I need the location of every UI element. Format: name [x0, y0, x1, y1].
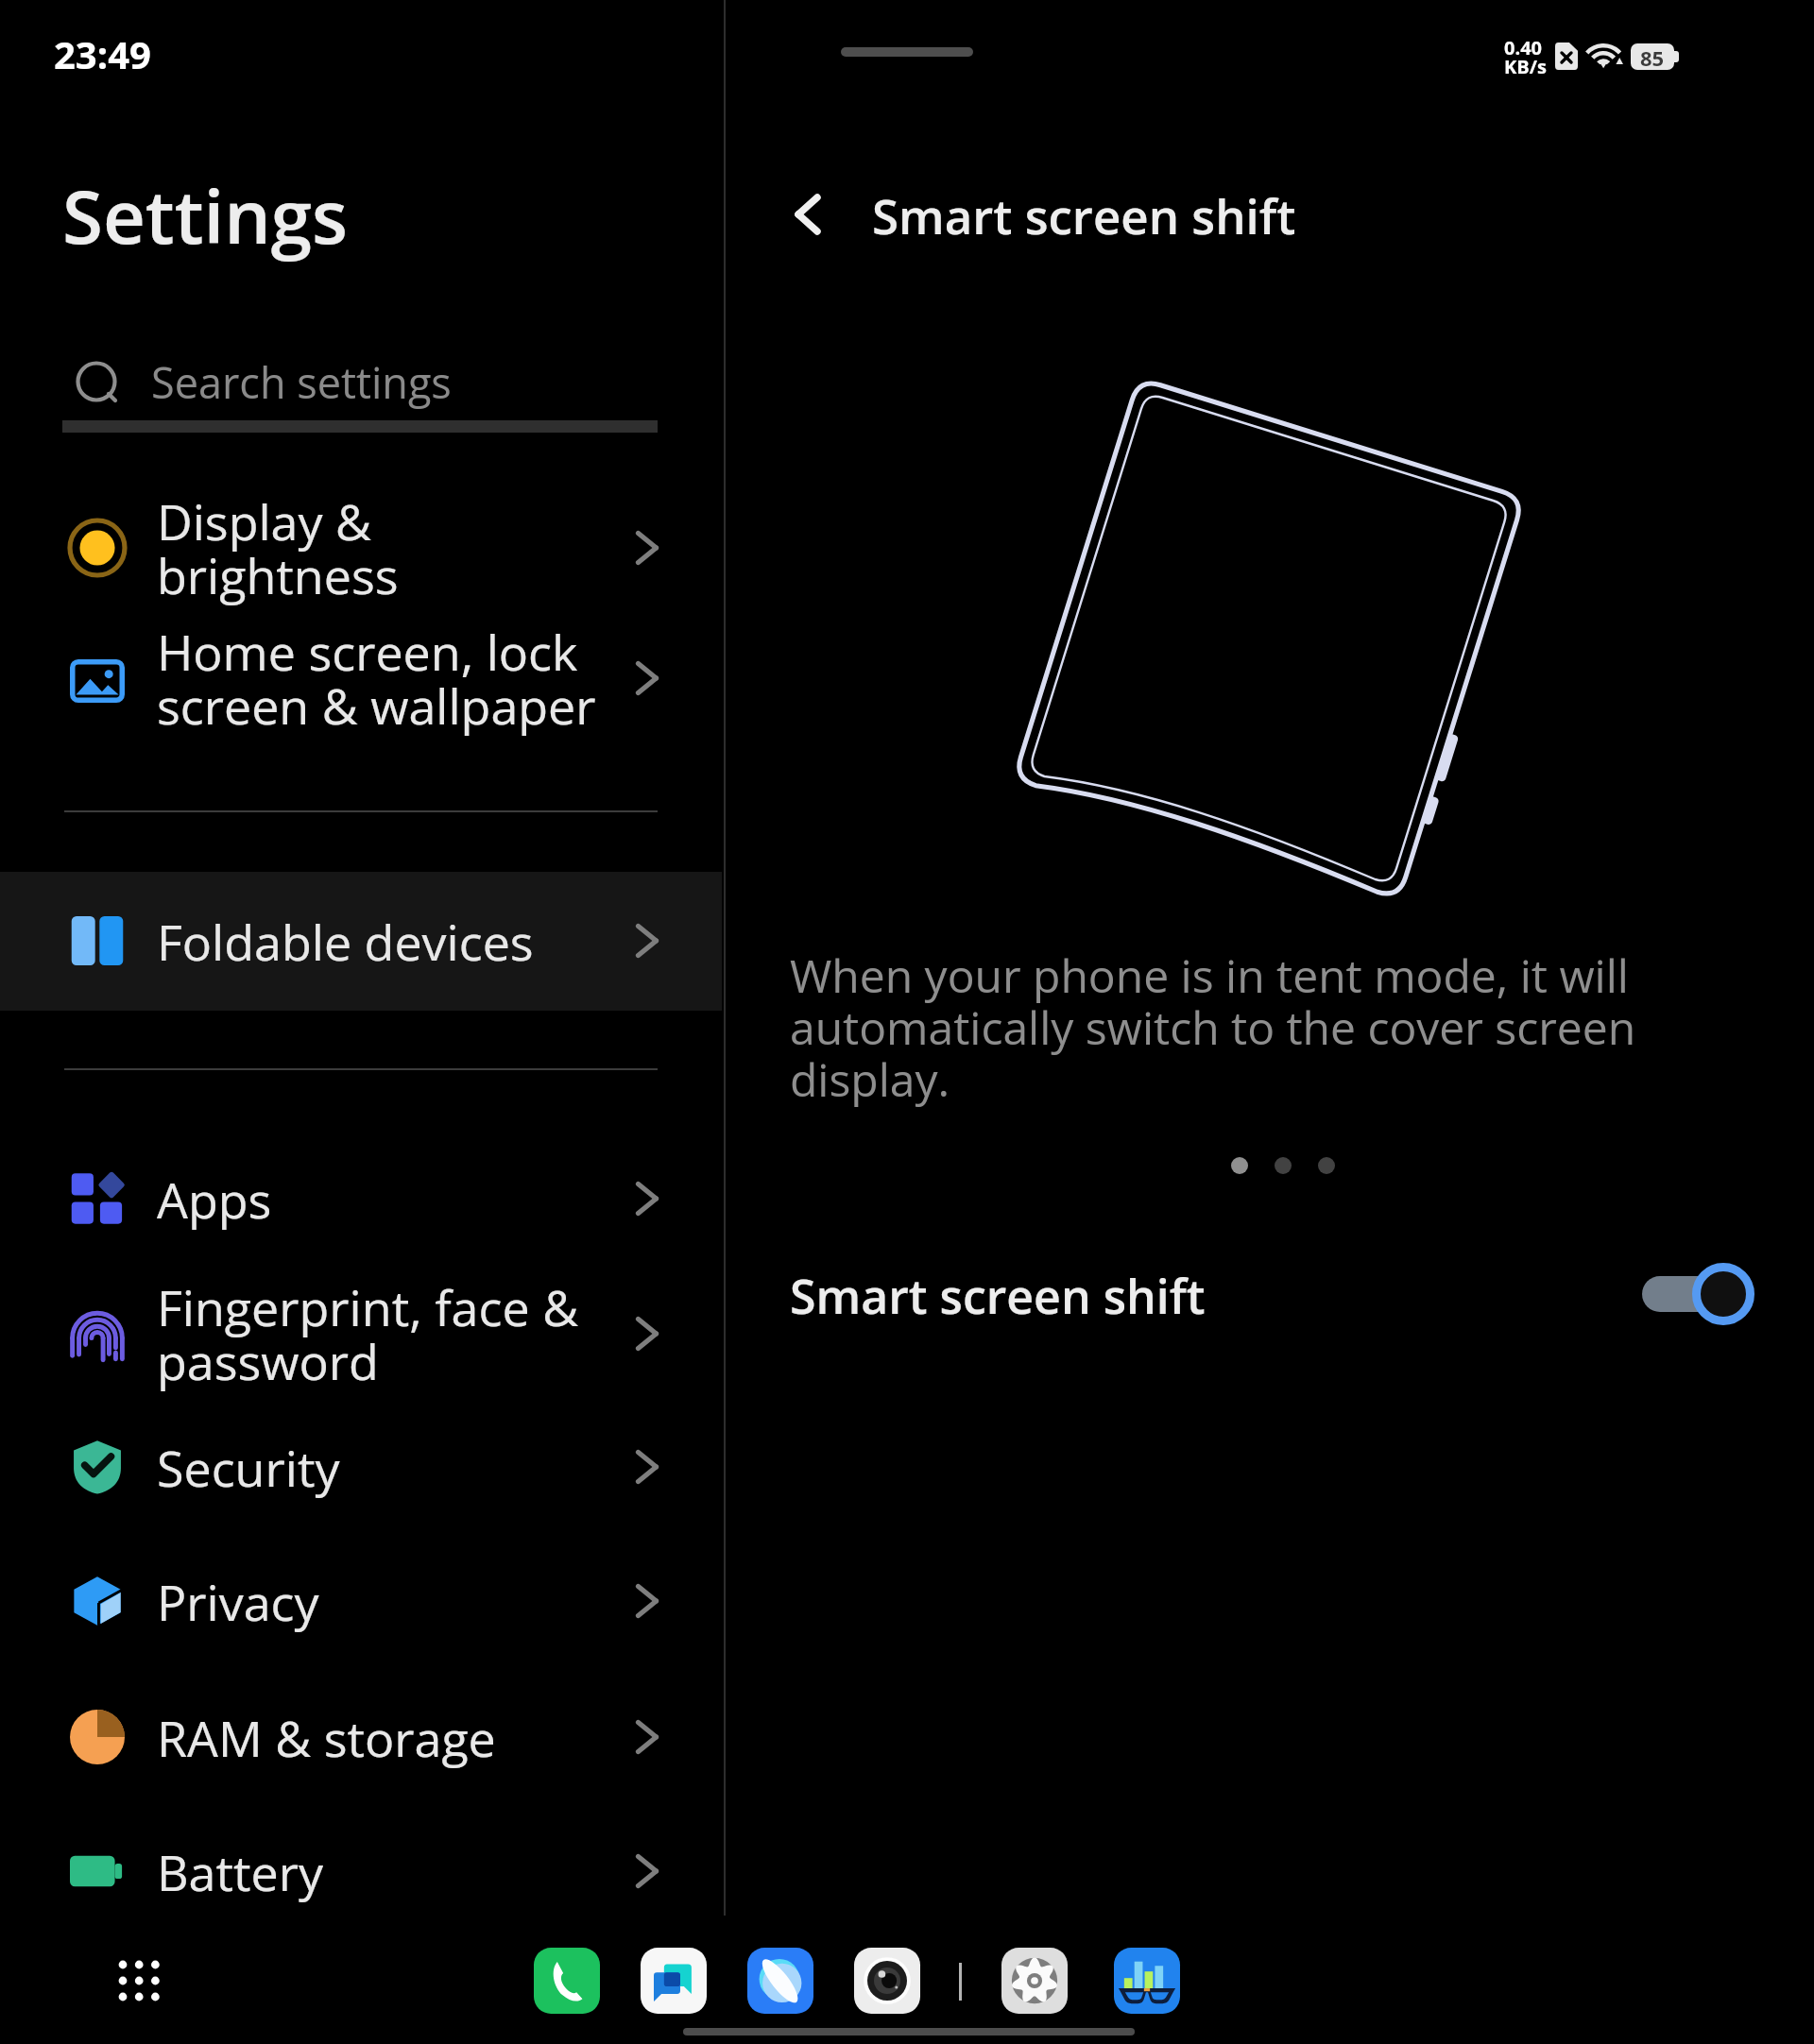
- staticText: Foldable devices: [157, 908, 622, 975]
- button[interactable]: App drawer: [106, 1944, 180, 2018]
- staticText: 0.40: [1504, 35, 1543, 60]
- staticText: Home screen, lock screen & wallpaper: [157, 618, 622, 739]
- button[interactable]: Battery: [0, 1804, 724, 1938]
- staticText: Settings: [62, 165, 349, 265]
- button[interactable]: Phone: [534, 1948, 600, 2014]
- staticText: Search settings: [151, 353, 452, 411]
- staticText: Battery: [157, 1838, 622, 1905]
- staticText: RAM & storage: [157, 1704, 622, 1771]
- button[interactable]: Smart screen shift: [746, 1228, 1776, 1360]
- button[interactable]: Camera: [854, 1948, 920, 2014]
- button[interactable]: Back: [761, 167, 855, 262]
- button[interactable]: Apps: [0, 1132, 724, 1266]
- staticText: Fingerprint, face & password: [157, 1273, 622, 1394]
- staticText: Apps: [157, 1166, 622, 1233]
- staticText: Display & brightness: [157, 487, 622, 608]
- button[interactable]: Display & brightness: [0, 481, 724, 615]
- staticText: KB/s: [1504, 54, 1547, 79]
- staticText: Security: [157, 1434, 622, 1501]
- button[interactable]: Security: [0, 1400, 724, 1534]
- button[interactable]: Messages: [641, 1948, 707, 2014]
- button[interactable]: Settings: [1001, 1948, 1068, 2014]
- button[interactable]: Privacy: [0, 1534, 724, 1668]
- staticText: When your phone is in tent mode, it will…: [790, 945, 1640, 1108]
- staticText: 23:49: [54, 28, 151, 79]
- button[interactable]: Foldable devices: [0, 874, 724, 1008]
- button[interactable]: Glasses: [1114, 1948, 1180, 2014]
- button[interactable]: Fingerprint, face & password: [0, 1267, 724, 1401]
- staticText: Smart screen shift: [790, 1264, 1206, 1328]
- button[interactable]: Search settings: [38, 335, 690, 439]
- staticText: Privacy: [157, 1568, 622, 1635]
- staticText: Smart screen shift: [872, 182, 1296, 247]
- button[interactable]: Home screen, lock screen & wallpaper: [0, 611, 724, 745]
- button[interactable]: Browser: [747, 1948, 813, 2014]
- button[interactable]: RAM & storage: [0, 1670, 724, 1804]
- staticText: 85: [1640, 43, 1665, 70]
